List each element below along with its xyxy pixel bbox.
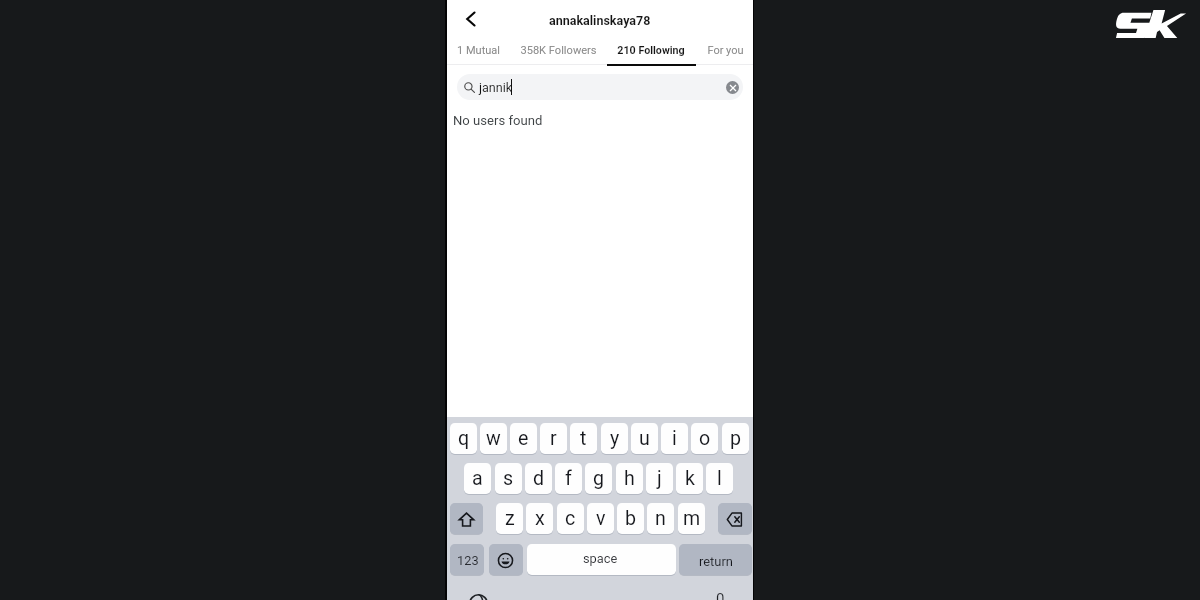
- staticText: g: [593, 467, 605, 490]
- button[interactable]: space: [527, 544, 676, 575]
- staticText: a: [472, 467, 483, 490]
- button[interactable]: w: [480, 423, 507, 454]
- staticText: For you: [707, 44, 744, 57]
- staticText: p: [730, 427, 742, 450]
- staticText: w: [486, 427, 501, 450]
- button[interactable]: f: [555, 463, 582, 494]
- button[interactable]: d: [525, 463, 552, 494]
- button[interactable]: 210 Following: [596, 37, 706, 63]
- button[interactable]: 123: [450, 544, 484, 575]
- staticText: y: [610, 427, 620, 450]
- button[interactable]: y: [601, 423, 628, 454]
- staticText: x: [535, 507, 545, 530]
- button[interactable]: o: [691, 423, 718, 454]
- button[interactable]: l: [706, 463, 733, 494]
- button[interactable]: j: [646, 463, 673, 494]
- staticText: 210 Following: [617, 44, 685, 57]
- button[interactable]: p: [722, 423, 749, 454]
- staticText: v: [596, 507, 606, 530]
- staticText: annakalinskaya78: [549, 13, 651, 28]
- button[interactable]: n: [647, 503, 674, 534]
- staticText: r: [550, 427, 557, 450]
- button[interactable]: Change keyboard: [469, 594, 488, 600]
- button[interactable]: jannik: [457, 74, 743, 100]
- staticText: f: [565, 467, 572, 490]
- button[interactable]: g: [585, 463, 612, 494]
- button[interactable]: Clear search: [726, 81, 739, 94]
- staticText: t: [580, 427, 587, 450]
- staticText: 1 Mutual: [457, 44, 500, 57]
- button[interactable]: u: [631, 423, 658, 454]
- staticText: 123: [457, 553, 479, 568]
- button[interactable]: 358K Followers: [503, 37, 613, 63]
- staticText: No users found: [453, 113, 543, 128]
- button[interactable]: e: [510, 423, 537, 454]
- staticText: o: [699, 427, 711, 450]
- staticText: q: [458, 427, 470, 450]
- staticText: c: [565, 507, 576, 530]
- staticText: k: [685, 467, 695, 490]
- button[interactable]: Backspace: [718, 503, 752, 534]
- button[interactable]: z: [496, 503, 523, 534]
- staticText: m: [683, 507, 701, 530]
- staticText: e: [518, 427, 529, 450]
- button[interactable]: Shift: [450, 503, 483, 534]
- button[interactable]: a: [464, 463, 491, 494]
- staticText: 0: [716, 590, 725, 600]
- staticText: u: [639, 427, 650, 450]
- button[interactable]: k: [676, 463, 703, 494]
- staticText: l: [717, 467, 722, 490]
- other: Sportskeeda logo: [1114, 7, 1188, 41]
- button[interactable]: Emoji: [489, 544, 523, 575]
- button[interactable]: h: [616, 463, 643, 494]
- staticText: s: [503, 467, 514, 490]
- button[interactable]: For you: [670, 37, 780, 63]
- button[interactable]: return: [679, 544, 752, 575]
- button[interactable]: x: [526, 503, 553, 534]
- button[interactable]: q: [450, 423, 477, 454]
- staticText: h: [624, 467, 635, 490]
- button[interactable]: v: [587, 503, 614, 534]
- button[interactable]: Back: [458, 6, 484, 32]
- staticText: 358K Followers: [520, 44, 597, 57]
- button[interactable]: s: [495, 463, 522, 494]
- staticText: i: [672, 427, 677, 450]
- staticText: jannik: [479, 80, 513, 95]
- button[interactable]: m: [678, 503, 705, 534]
- button[interactable]: t: [570, 423, 597, 454]
- button[interactable]: b: [617, 503, 644, 534]
- staticText: b: [625, 507, 637, 530]
- button[interactable]: c: [557, 503, 584, 534]
- button[interactable]: i: [661, 423, 688, 454]
- button[interactable]: r: [540, 423, 567, 454]
- button[interactable]: 1 Mutual: [423, 37, 533, 63]
- staticText: j: [657, 467, 662, 490]
- staticText: n: [655, 507, 666, 530]
- staticText: z: [505, 507, 515, 530]
- staticText: return: [699, 554, 733, 569]
- staticText: space: [583, 551, 618, 566]
- staticText: d: [533, 467, 545, 490]
